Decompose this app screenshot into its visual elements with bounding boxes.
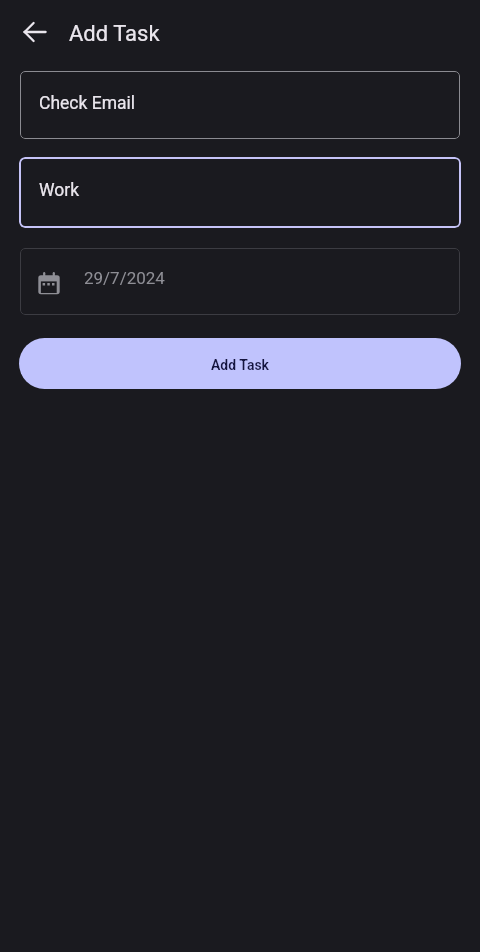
button[interactable]: Check Email — [20, 71, 460, 139]
staticText: Work — [39, 180, 80, 201]
staticText: 29/7/2024 — [84, 268, 165, 288]
staticText: Add Task — [211, 357, 269, 373]
staticText: Check Email — [39, 93, 136, 114]
button[interactable]: Back — [20, 17, 50, 47]
button[interactable]: Add Task — [19, 338, 461, 389]
button[interactable]: 29/7/2024 — [20, 248, 460, 315]
staticText: Add Task — [69, 21, 160, 47]
button[interactable]: Work — [19, 157, 461, 228]
